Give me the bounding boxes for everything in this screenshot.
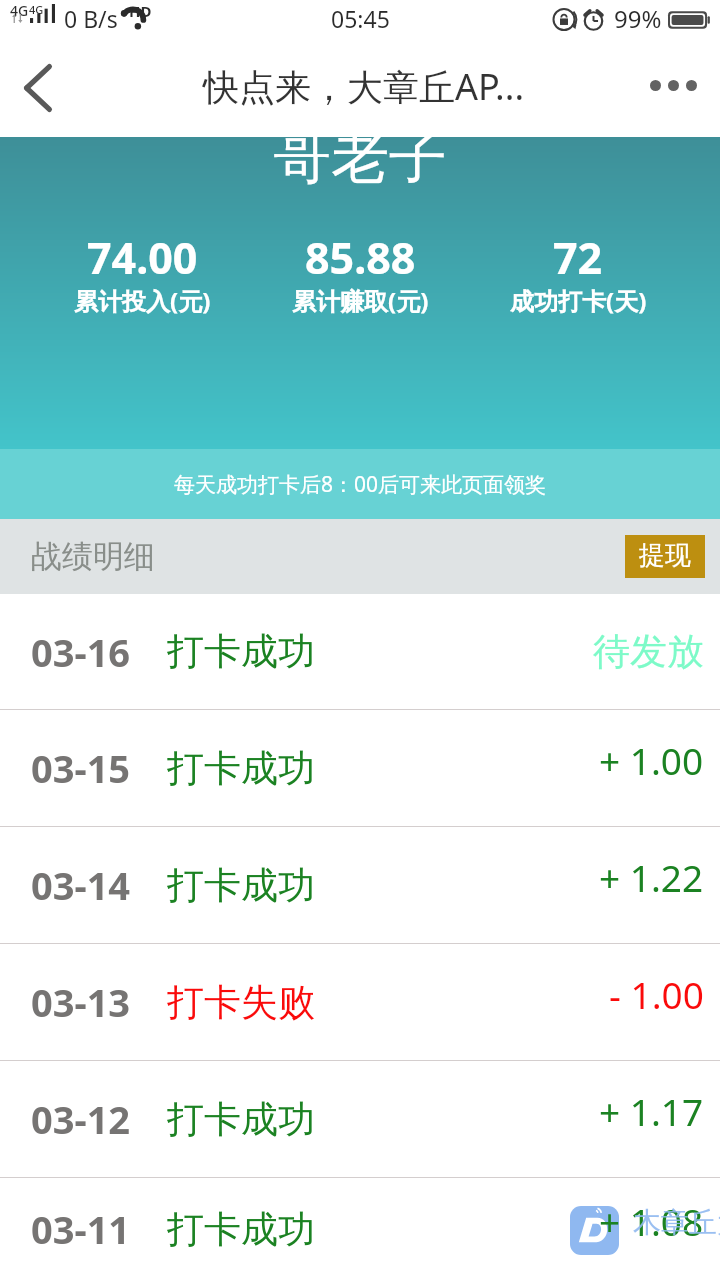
- staticText: 打卡失败: [167, 979, 315, 1026]
- staticText: 打卡成功: [167, 628, 315, 675]
- staticText: 打卡成功: [167, 1206, 315, 1253]
- staticText: 0 B/s: [64, 3, 118, 34]
- staticText: 03-15: [31, 742, 131, 794]
- staticText: 战绩明细: [31, 537, 155, 576]
- button[interactable]: 03-11: [0, 1178, 720, 1280]
- staticText: 03-11: [31, 1203, 131, 1255]
- button[interactable]: 03-16: [0, 594, 720, 709]
- staticText: 03-14: [31, 859, 131, 911]
- staticText: 99%: [614, 2, 662, 35]
- staticText: - 1.00: [609, 969, 704, 1019]
- button[interactable]: Back: [0, 38, 76, 137]
- button[interactable]: 03-14: [0, 827, 720, 943]
- staticText: 05:45: [331, 3, 390, 34]
- staticText: 提现: [639, 539, 691, 572]
- staticText: 打卡成功: [167, 862, 315, 909]
- staticText: 03-13: [31, 976, 131, 1028]
- staticText: 待发放: [593, 628, 704, 675]
- button[interactable]: More options: [648, 38, 720, 137]
- button[interactable]: 03-15: [0, 710, 720, 826]
- staticText: 每天成功打卡后8：00后可来此页面领奖: [174, 470, 547, 499]
- staticText: HD: [129, 1, 152, 21]
- staticText: 快点来，大章丘AP...: [203, 62, 525, 111]
- staticText: 03-16: [31, 626, 131, 678]
- staticText: + 1.22: [599, 852, 704, 902]
- staticText: 累计投入(元): [74, 284, 211, 317]
- staticText: + 1.17: [599, 1086, 704, 1136]
- staticText: 85.88: [305, 228, 416, 287]
- staticText: 打卡成功: [167, 745, 315, 792]
- button[interactable]: 提现: [625, 535, 705, 578]
- staticText: 哥老子: [273, 121, 447, 194]
- staticText: 成功打卡(天): [510, 284, 647, 317]
- staticText: + 1.00: [599, 735, 704, 785]
- staticText: 木章丘大章丘: [633, 1205, 720, 1240]
- button[interactable]: 03-13: [0, 944, 720, 1060]
- staticText: + 1.08: [599, 1196, 704, 1246]
- button[interactable]: 03-12: [0, 1061, 720, 1177]
- staticText: 4G: [29, 2, 44, 17]
- staticText: 03-12: [31, 1093, 131, 1145]
- staticText: 打卡成功: [167, 1096, 315, 1143]
- staticText: 4G: [10, 1, 29, 20]
- staticText: 74.00: [87, 228, 198, 287]
- staticText: 72: [553, 228, 603, 287]
- staticText: 累计赚取(元): [292, 284, 429, 317]
